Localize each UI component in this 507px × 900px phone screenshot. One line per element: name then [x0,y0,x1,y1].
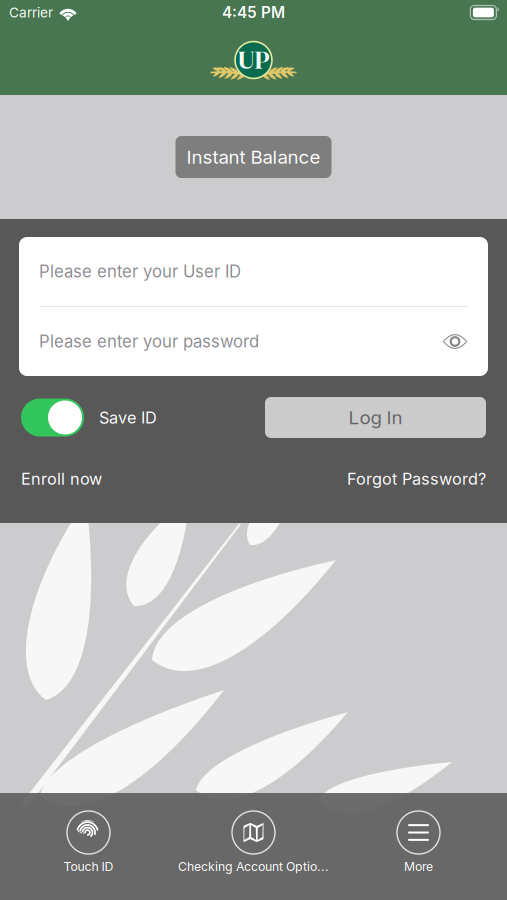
staticText: Carrier [9,4,53,21]
staticText: Please enter your password [39,331,259,352]
button[interactable]: Instant Balance [175,136,331,178]
button[interactable]: Please enter your password [19,307,488,376]
button[interactable]: Checking Account Options [171,811,336,874]
button[interactable]: More [336,811,501,874]
staticText: Save ID [99,408,157,427]
staticText: Checking Account Optio... [178,859,329,874]
button[interactable]: Forgot Password? [347,469,486,489]
staticText: Enroll now [21,469,102,489]
button[interactable]: Save ID [21,398,84,436]
button[interactable]: Touch ID [6,811,171,874]
staticText: Log In [348,406,402,429]
staticText: Forgot Password? [347,469,486,489]
staticText: Please enter your User ID [39,261,241,282]
staticText: UP [237,41,269,78]
staticText: More [404,859,433,874]
staticText: 4:45 PM [222,3,285,22]
button[interactable]: Please enter your User ID [19,237,488,306]
button[interactable]: Log In [265,397,486,438]
button[interactable]: Enroll now [21,469,102,489]
staticText: Touch ID [63,859,113,874]
staticText: Instant Balance [186,146,320,168]
